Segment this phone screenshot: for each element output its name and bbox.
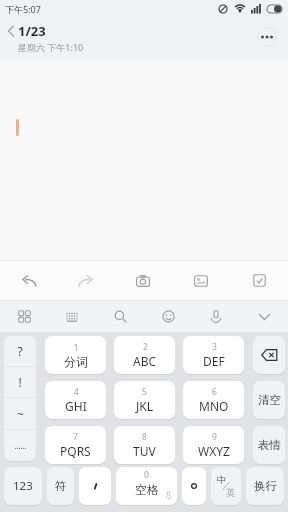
button[interactable]: 6 — [183, 381, 244, 419]
button[interactable] — [79, 467, 111, 505]
staticText: 符 — [55, 479, 67, 493]
button[interactable]: 3 — [183, 336, 244, 374]
button[interactable] — [172, 261, 230, 300]
staticText: JKL — [136, 398, 153, 414]
staticText: 6 — [212, 386, 217, 398]
button[interactable]: 5 — [114, 381, 175, 419]
staticText: GHI — [65, 398, 87, 414]
staticText: 9 — [212, 431, 217, 443]
button[interactable] — [182, 467, 206, 505]
button[interactable]: 清空 — [253, 381, 285, 419]
staticText: 5 — [142, 386, 147, 398]
button[interactable] — [230, 261, 288, 300]
button[interactable] — [96, 301, 144, 332]
staticText: 下午5:07 — [5, 3, 41, 15]
button[interactable] — [0, 261, 57, 300]
button[interactable]: ! — [4, 367, 36, 397]
staticText: ? — [17, 343, 23, 359]
staticText: 换行 — [254, 479, 277, 493]
staticText: ~ — [17, 406, 24, 422]
button[interactable]: ? — [4, 336, 36, 366]
button[interactable]: 4 — [45, 381, 106, 419]
button[interactable]: 9 — [183, 426, 244, 464]
staticText: 表情 — [258, 438, 281, 452]
staticText: WXYZ — [198, 443, 230, 459]
button[interactable]: 7 — [45, 426, 106, 464]
button[interactable]: 1 — [45, 336, 106, 374]
staticText: 7 — [73, 431, 78, 443]
button[interactable] — [114, 261, 172, 300]
button[interactable] — [253, 336, 285, 374]
button[interactable]: 2 — [114, 336, 175, 374]
staticText: 123 — [13, 478, 33, 494]
staticText: ABC — [133, 353, 157, 369]
button[interactable] — [144, 301, 192, 332]
button[interactable] — [0, 301, 48, 332]
button[interactable]: 8 — [114, 426, 175, 464]
staticText: 4 — [74, 386, 79, 398]
staticText: PQRS — [60, 443, 91, 459]
button[interactable]: 表情 — [253, 426, 285, 464]
staticText: 分词 — [64, 354, 88, 369]
staticText: 1/23 — [18, 22, 46, 40]
button[interactable] — [48, 301, 96, 332]
staticText: 空格 — [135, 482, 159, 497]
button[interactable]: 换行 — [246, 467, 284, 505]
button[interactable]: ~ — [4, 398, 36, 429]
staticText: 2 — [143, 341, 148, 353]
staticText: 星期六 下午1:10 — [18, 41, 84, 53]
button[interactable] — [240, 301, 288, 332]
staticText: 清空 — [258, 393, 281, 407]
staticText: 中 — [217, 474, 226, 485]
staticText: 英 — [226, 487, 235, 498]
button[interactable]: 123 — [4, 467, 42, 505]
staticText: 1 — [74, 342, 79, 354]
staticText: MNO — [199, 398, 229, 414]
staticText: 0 — [144, 469, 149, 481]
staticText: TUV — [133, 443, 156, 459]
staticText: ! — [18, 374, 22, 390]
button[interactable]: …… — [4, 430, 36, 461]
button[interactable] — [192, 301, 240, 332]
staticText: …… — [14, 440, 27, 451]
button[interactable] — [257, 27, 277, 47]
button[interactable]: 符 — [47, 467, 74, 505]
button[interactable]: 中 — [211, 467, 241, 505]
button[interactable]: 0 — [116, 467, 177, 505]
staticText: 3 — [212, 341, 217, 353]
button[interactable] — [57, 261, 114, 300]
staticText: 8 — [142, 431, 147, 443]
staticText: DEF — [203, 353, 225, 369]
